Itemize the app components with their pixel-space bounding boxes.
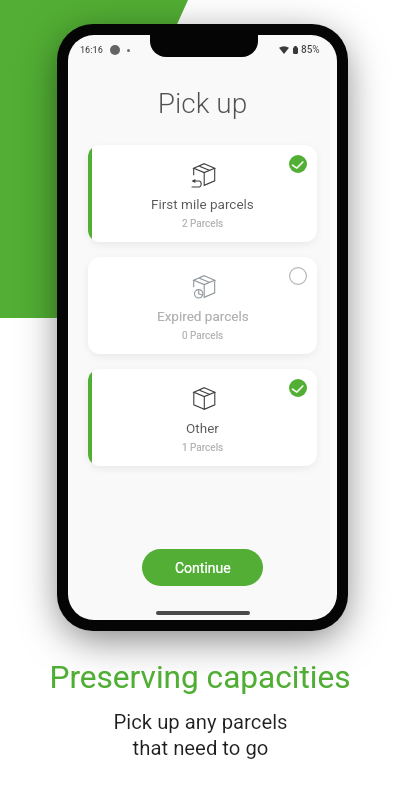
staticText: Pick up xyxy=(68,87,337,120)
staticText: Preserving capacities xyxy=(49,659,351,696)
staticText: 0 Parcels xyxy=(182,330,224,342)
button[interactable]: First mile parcels xyxy=(88,145,317,242)
button[interactable]: Expired parcels xyxy=(88,257,317,354)
button[interactable]: Continue xyxy=(142,549,263,586)
button[interactable]: Selected xyxy=(289,379,307,397)
button[interactable]: Selected xyxy=(289,155,307,173)
button[interactable]: Not selected xyxy=(289,267,307,285)
staticText: 85% xyxy=(301,44,320,56)
button[interactable]: Other xyxy=(88,369,317,466)
staticText: 1 Parcels xyxy=(182,442,224,454)
staticText: Pick up any parcels that need to go xyxy=(113,710,288,760)
staticText: 16:16 xyxy=(80,45,103,56)
staticText: 2 Parcels xyxy=(182,218,224,230)
staticText: First mile parcels xyxy=(151,196,254,212)
staticText: Expired parcels xyxy=(157,308,249,324)
staticText: Other xyxy=(186,420,219,436)
staticText: Continue xyxy=(175,560,231,576)
